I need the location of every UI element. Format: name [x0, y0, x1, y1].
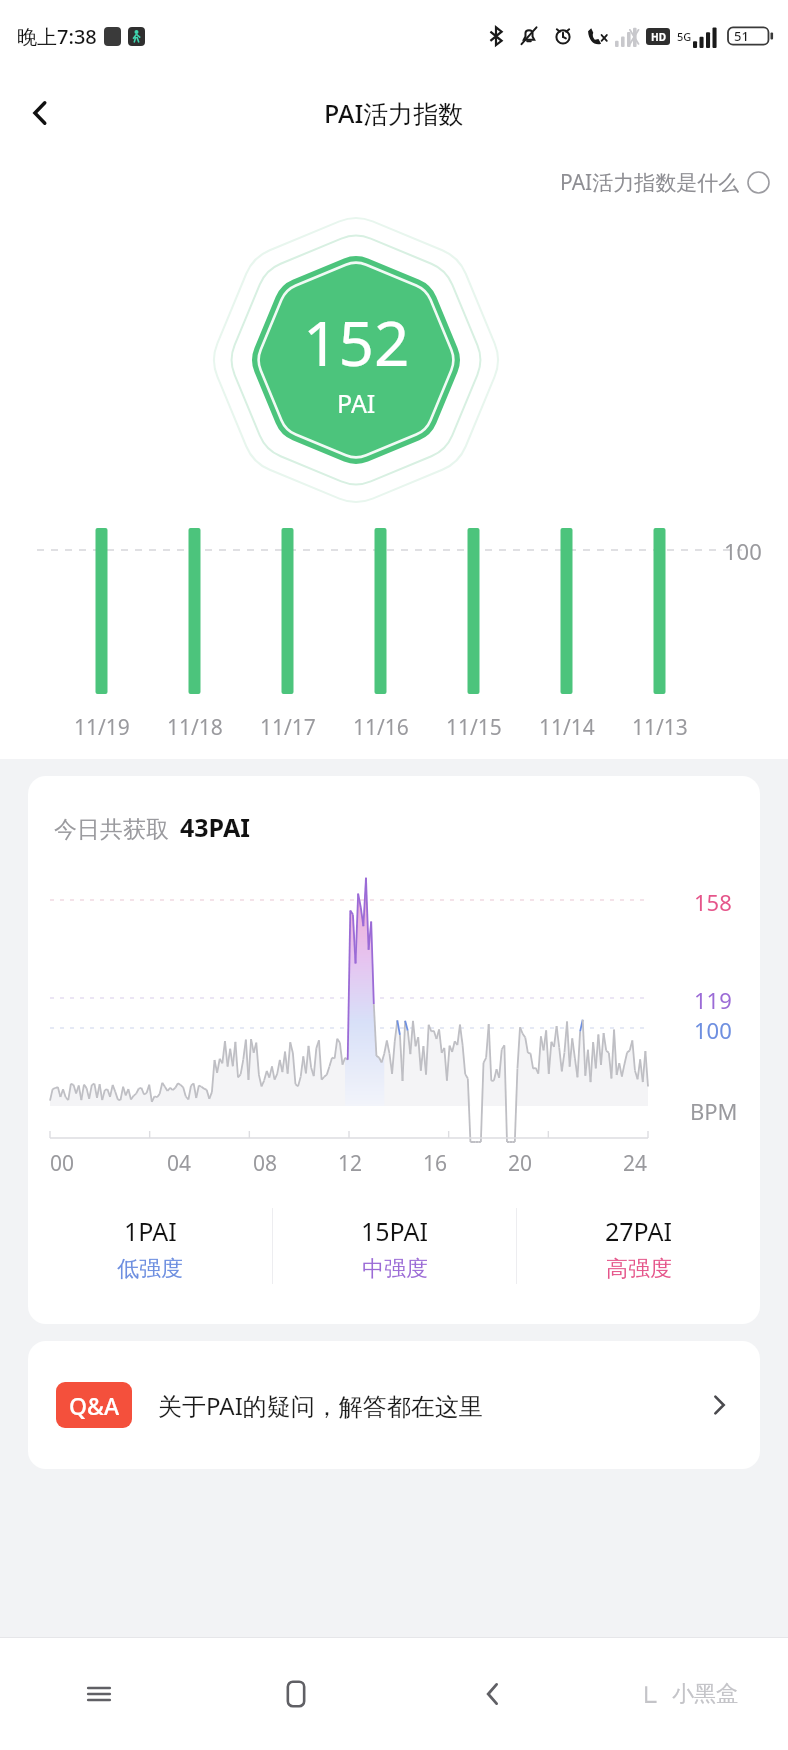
staticText: 高强度: [606, 1255, 672, 1283]
staticText: 119: [694, 985, 732, 1015]
staticText: 43PAI: [180, 810, 250, 844]
button[interactable]: 1PAI: [28, 1208, 272, 1288]
staticText: PAI: [337, 386, 376, 420]
staticText: 关于PAI的疑问，解答都在这里: [158, 1389, 483, 1422]
staticText: HD: [651, 30, 666, 44]
staticText: 24: [623, 1149, 648, 1178]
staticText: PAI活力指数是什么: [560, 168, 740, 197]
staticText: 04: [167, 1149, 192, 1178]
staticText: 5G: [677, 29, 692, 44]
staticText: 11/18: [167, 713, 223, 742]
staticText: 11/16: [353, 713, 409, 742]
staticText: 152: [303, 300, 410, 384]
staticText: 51: [734, 27, 749, 45]
staticText: 1PAI: [124, 1214, 177, 1248]
staticText: 今日共获取: [54, 815, 169, 844]
staticText: 11/19: [74, 713, 130, 742]
staticText: 20: [508, 1149, 533, 1178]
staticText: 小黑盒: [672, 1680, 738, 1708]
staticText: 100: [694, 1015, 732, 1045]
staticText: 12: [338, 1149, 363, 1178]
staticText: Q&A: [69, 1390, 120, 1421]
button[interactable]: Q&A: [28, 1341, 760, 1469]
staticText: 11/15: [446, 713, 502, 742]
staticText: 16: [423, 1149, 448, 1178]
button[interactable]: 15PAI: [273, 1208, 516, 1288]
staticText: BPM: [690, 1096, 738, 1126]
button[interactable]: Back: [10, 83, 70, 143]
staticText: 中强度: [362, 1255, 428, 1283]
staticText: 00: [50, 1149, 75, 1178]
staticText: 27PAI: [605, 1214, 672, 1248]
staticText: PAI活力指数: [324, 96, 464, 130]
staticText: 100: [724, 536, 762, 566]
staticText: 11/13: [632, 713, 688, 742]
staticText: 11/17: [260, 713, 316, 742]
button[interactable]: PAI活力指数是什么: [560, 168, 770, 197]
staticText: 08: [253, 1149, 278, 1178]
staticText: 11/14: [539, 713, 595, 742]
staticText: 158: [694, 887, 732, 917]
button[interactable]: 27PAI: [517, 1208, 760, 1288]
staticText: 15PAI: [361, 1214, 428, 1248]
staticText: 低强度: [117, 1255, 183, 1283]
button[interactable]: Back: [394, 1638, 591, 1750]
button[interactable]: Recents: [0, 1638, 197, 1750]
button[interactable]: Home: [197, 1638, 394, 1750]
staticText: 晚上7:38: [17, 23, 97, 50]
